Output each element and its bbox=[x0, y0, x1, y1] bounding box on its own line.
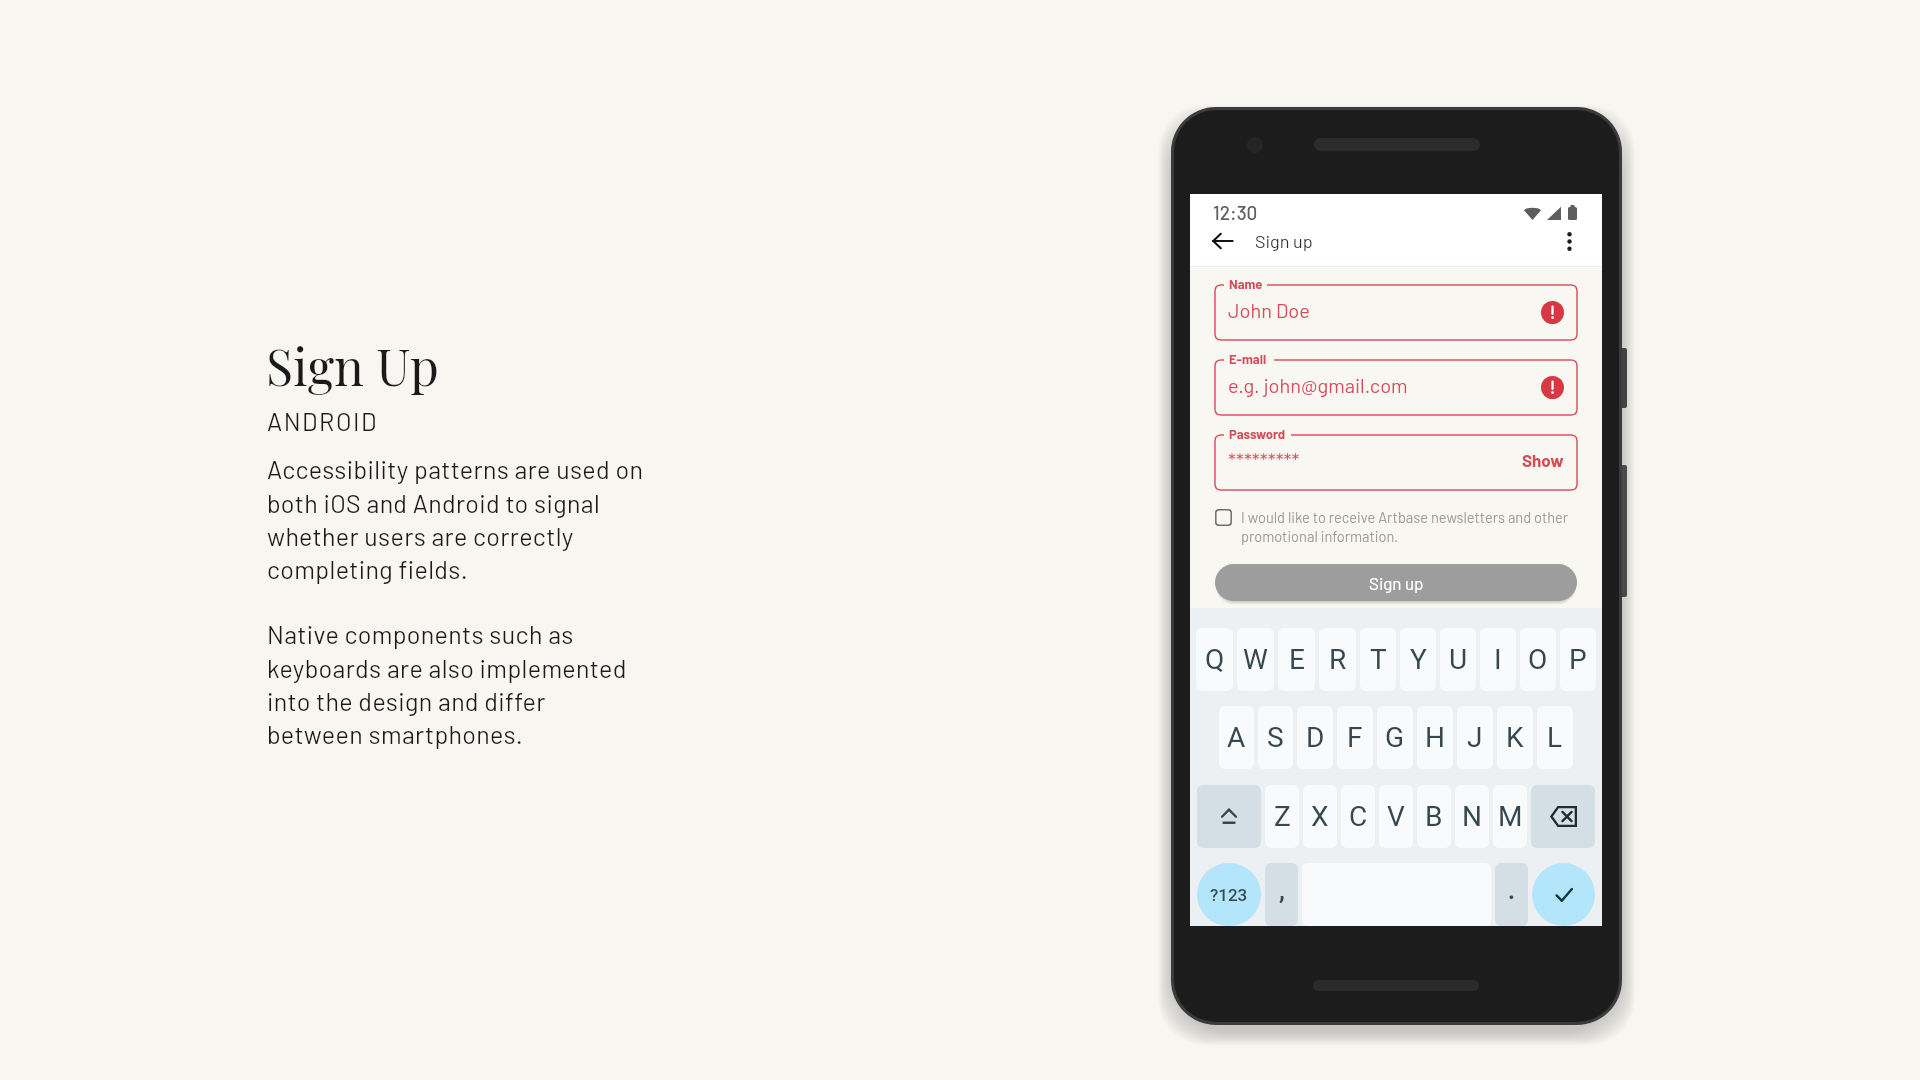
staticText: Show bbox=[1522, 450, 1564, 470]
staticText: M bbox=[1498, 800, 1523, 833]
button[interactable]: Backspace bbox=[1531, 785, 1595, 848]
staticText: Native components such as keyboards are … bbox=[267, 619, 627, 749]
button[interactable]: Error bbox=[1541, 301, 1564, 324]
button[interactable]: F bbox=[1337, 706, 1373, 769]
button[interactable]: G bbox=[1377, 706, 1413, 769]
button[interactable]: H bbox=[1417, 706, 1453, 769]
button[interactable]: Sign up bbox=[1215, 564, 1577, 601]
button[interactable]: . bbox=[1495, 863, 1528, 926]
staticText: L bbox=[1547, 721, 1563, 754]
staticText: B bbox=[1425, 800, 1443, 833]
button[interactable]: L bbox=[1537, 706, 1573, 769]
button[interactable]: M bbox=[1493, 785, 1527, 848]
staticText: T bbox=[1370, 643, 1387, 676]
staticText: N bbox=[1462, 800, 1482, 833]
button[interactable]: Show bbox=[1520, 450, 1566, 470]
staticText: D bbox=[1306, 721, 1325, 754]
staticText: W bbox=[1243, 643, 1268, 676]
button[interactable]: More options bbox=[1560, 227, 1578, 255]
button[interactable]: I would like to receive Artbase newslett… bbox=[1215, 508, 1577, 545]
staticText: Q bbox=[1205, 643, 1225, 676]
button[interactable]: S bbox=[1258, 706, 1293, 769]
button[interactable]: B bbox=[1417, 785, 1451, 848]
staticText: . bbox=[1508, 877, 1515, 905]
button[interactable]: Enter bbox=[1532, 863, 1595, 926]
button[interactable]: Y bbox=[1400, 628, 1436, 691]
staticText: C bbox=[1349, 800, 1368, 833]
staticText: Sign up bbox=[1255, 230, 1313, 252]
staticText: ?123 bbox=[1210, 885, 1248, 905]
button[interactable]: Q bbox=[1196, 628, 1233, 691]
staticText: G bbox=[1385, 721, 1405, 754]
button[interactable]: , bbox=[1265, 863, 1298, 926]
button[interactable]: N bbox=[1455, 785, 1489, 848]
button[interactable]: V bbox=[1379, 785, 1413, 848]
button[interactable]: P bbox=[1560, 628, 1596, 691]
staticText: P bbox=[1569, 643, 1587, 676]
staticText: Y bbox=[1410, 643, 1427, 676]
staticText: E bbox=[1289, 643, 1305, 676]
staticText: Password bbox=[1229, 426, 1286, 442]
button[interactable]: W bbox=[1237, 628, 1274, 691]
button[interactable]: E bbox=[1278, 628, 1315, 691]
staticText: ********* bbox=[1228, 448, 1300, 472]
staticText: Sign Up bbox=[266, 332, 439, 399]
button[interactable]: O bbox=[1520, 628, 1556, 691]
button[interactable]: D bbox=[1297, 706, 1333, 769]
staticText: Name bbox=[1229, 276, 1263, 292]
staticText: R bbox=[1329, 643, 1347, 676]
button[interactable]: Back bbox=[1212, 228, 1233, 254]
staticText: O bbox=[1528, 643, 1548, 676]
button[interactable]: T bbox=[1360, 628, 1396, 691]
button[interactable]: A bbox=[1219, 706, 1254, 769]
staticText: K bbox=[1506, 721, 1524, 754]
staticText: Accessibility patterns are used on both … bbox=[267, 454, 644, 584]
button[interactable]: J bbox=[1457, 706, 1493, 769]
staticText: A bbox=[1227, 721, 1246, 754]
staticText: I would like to receive Artbase newslett… bbox=[1241, 508, 1569, 545]
staticText: , bbox=[1279, 877, 1285, 905]
button[interactable]: Shift bbox=[1197, 785, 1261, 848]
staticText: 12:30 bbox=[1213, 201, 1258, 224]
button[interactable]: U bbox=[1440, 628, 1476, 691]
staticText: S bbox=[1267, 721, 1284, 754]
staticText: V bbox=[1387, 800, 1405, 833]
button[interactable]: Error bbox=[1541, 376, 1564, 399]
staticText: e.g. john@gmail.com bbox=[1228, 373, 1408, 397]
staticText: I bbox=[1494, 643, 1502, 676]
staticText: U bbox=[1449, 643, 1468, 676]
staticText: Z bbox=[1274, 800, 1291, 833]
button[interactable]: K bbox=[1497, 706, 1533, 769]
staticText: ANDROID bbox=[267, 406, 379, 436]
staticText: X bbox=[1311, 800, 1329, 833]
button[interactable]: R bbox=[1319, 628, 1356, 691]
button[interactable]: ?123 bbox=[1197, 863, 1261, 926]
staticText: J bbox=[1467, 721, 1483, 754]
button[interactable]: I bbox=[1480, 628, 1516, 691]
staticText: John Doe bbox=[1228, 298, 1310, 322]
staticText: Sign up bbox=[1369, 573, 1424, 593]
staticText: F bbox=[1347, 721, 1363, 754]
button[interactable]: X bbox=[1303, 785, 1337, 848]
staticText: H bbox=[1425, 721, 1445, 754]
button[interactable]: C bbox=[1341, 785, 1375, 848]
button[interactable]: Z bbox=[1265, 785, 1299, 848]
staticText: E-mail bbox=[1229, 351, 1267, 367]
